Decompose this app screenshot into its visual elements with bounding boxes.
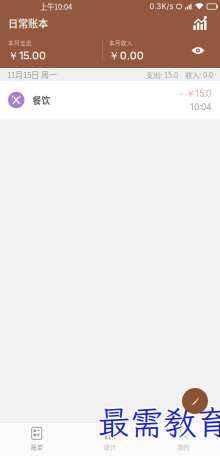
staticText: ￥15.00: [8, 49, 46, 63]
button[interactable]: 餐饮: [0, 81, 220, 119]
staticText: 最需教育: [98, 400, 220, 444]
staticText: 最需教育: [96, 400, 220, 444]
button[interactable]: 我的: [147, 422, 220, 456]
staticText: ￥0.00: [109, 49, 144, 63]
staticText: 0.3K/s: [149, 2, 173, 11]
staticText: 最需教育: [98, 401, 220, 445]
button[interactable]: 统计: [73, 422, 147, 456]
button[interactable]: 隐藏金额: [187, 39, 209, 61]
staticText: 本月收入: [109, 38, 133, 46]
staticText: 收入: 0.0: [185, 69, 213, 80]
staticText: 最需教育: [98, 399, 220, 443]
staticText: 统计: [104, 442, 116, 451]
staticText: 最需教育: [96, 401, 220, 445]
staticText: 10:04: [190, 102, 212, 112]
staticText: 账单: [31, 442, 43, 451]
button[interactable]: 统计: [188, 12, 212, 33]
button[interactable]: 记一笔: [182, 388, 208, 414]
staticText: 支出: 15.0: [146, 69, 178, 80]
button[interactable]: 账单: [0, 422, 73, 456]
staticText: 最需教育: [96, 399, 220, 443]
staticText: 餐饮: [32, 94, 50, 106]
staticText: 最需教育: [97, 401, 220, 445]
staticText: 最需教育: [97, 400, 220, 444]
staticText: 最需教育: [97, 399, 220, 442]
staticText: 上午10:04: [40, 1, 72, 12]
staticText: 我的: [177, 442, 189, 451]
staticText: 本月支出: [8, 38, 32, 46]
staticText: 11月15日 周一: [7, 69, 57, 80]
staticText: 日常账本: [8, 16, 48, 30]
staticText: - ￥15.0: [179, 88, 212, 99]
